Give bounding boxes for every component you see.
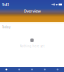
- staticText: Nothing here yet: [19, 44, 44, 48]
- button[interactable]: Tab 4: [38, 67, 51, 72]
- staticText: Today: [2, 25, 10, 29]
- button[interactable]: Tab 5: [51, 67, 64, 72]
- staticText: 9:41: [2, 2, 9, 7]
- staticText: Overview: [23, 8, 40, 14]
- button[interactable]: Tab 2: [13, 67, 26, 72]
- button[interactable]: Tab 3: [26, 67, 38, 72]
- button[interactable]: Tab 1: [0, 67, 13, 72]
